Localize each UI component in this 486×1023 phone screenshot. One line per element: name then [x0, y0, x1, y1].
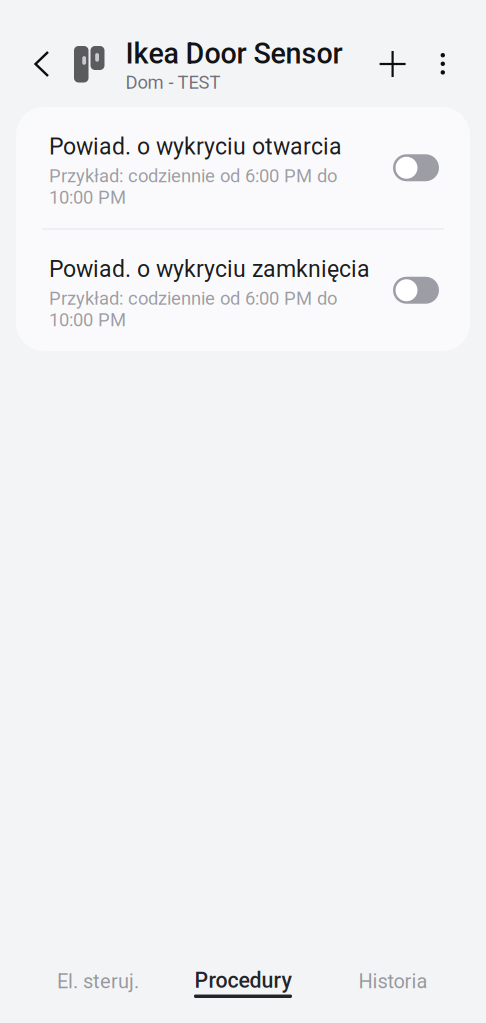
staticText: Powiad. o wykryciu zamknięcia	[49, 256, 370, 283]
staticText: Historia	[358, 970, 427, 993]
staticText: Przykład: codziennie od 6:00 PM do 10:00…	[49, 165, 337, 208]
staticText: El. steruj.	[57, 970, 139, 993]
staticText: Przykład: codziennie od 6:00 PM do 10:00…	[49, 288, 337, 331]
staticText: Dom - TEST	[125, 72, 220, 93]
button[interactable]: Powiad. o wykryciu otwarcia	[16, 107, 470, 228]
staticText: Procedury	[194, 968, 291, 993]
button[interactable]: Historia	[319, 942, 467, 1019]
button[interactable]: Back	[0, 0, 74, 97]
button[interactable]: Procedury	[167, 941, 319, 1021]
button[interactable]: El. steruj.	[29, 942, 167, 1019]
button[interactable]: Add	[354, 0, 427, 97]
staticText: Ikea Door Sensor	[125, 37, 342, 71]
button[interactable]: More options	[427, 0, 486, 95]
staticText: Powiad. o wykryciu otwarcia	[49, 133, 342, 160]
button[interactable]: Powiad. o wykryciu zamknięcia	[16, 229, 470, 351]
